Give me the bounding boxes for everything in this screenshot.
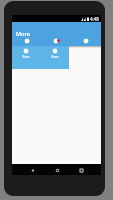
button[interactable]: Back <box>28 166 36 174</box>
staticText: 4:48 <box>90 16 99 22</box>
button[interactable]: Recents <box>77 166 85 174</box>
button[interactable]: Item <box>12 46 40 69</box>
button[interactable]: Item <box>12 36 41 45</box>
button[interactable]: Item <box>40 46 69 69</box>
button[interactable]: Item <box>71 36 101 45</box>
staticText: Item <box>51 55 59 59</box>
button[interactable]: Item <box>41 36 71 45</box>
staticText: Item <box>22 55 30 59</box>
button[interactable]: Home <box>53 166 61 174</box>
staticText: More <box>16 30 30 37</box>
